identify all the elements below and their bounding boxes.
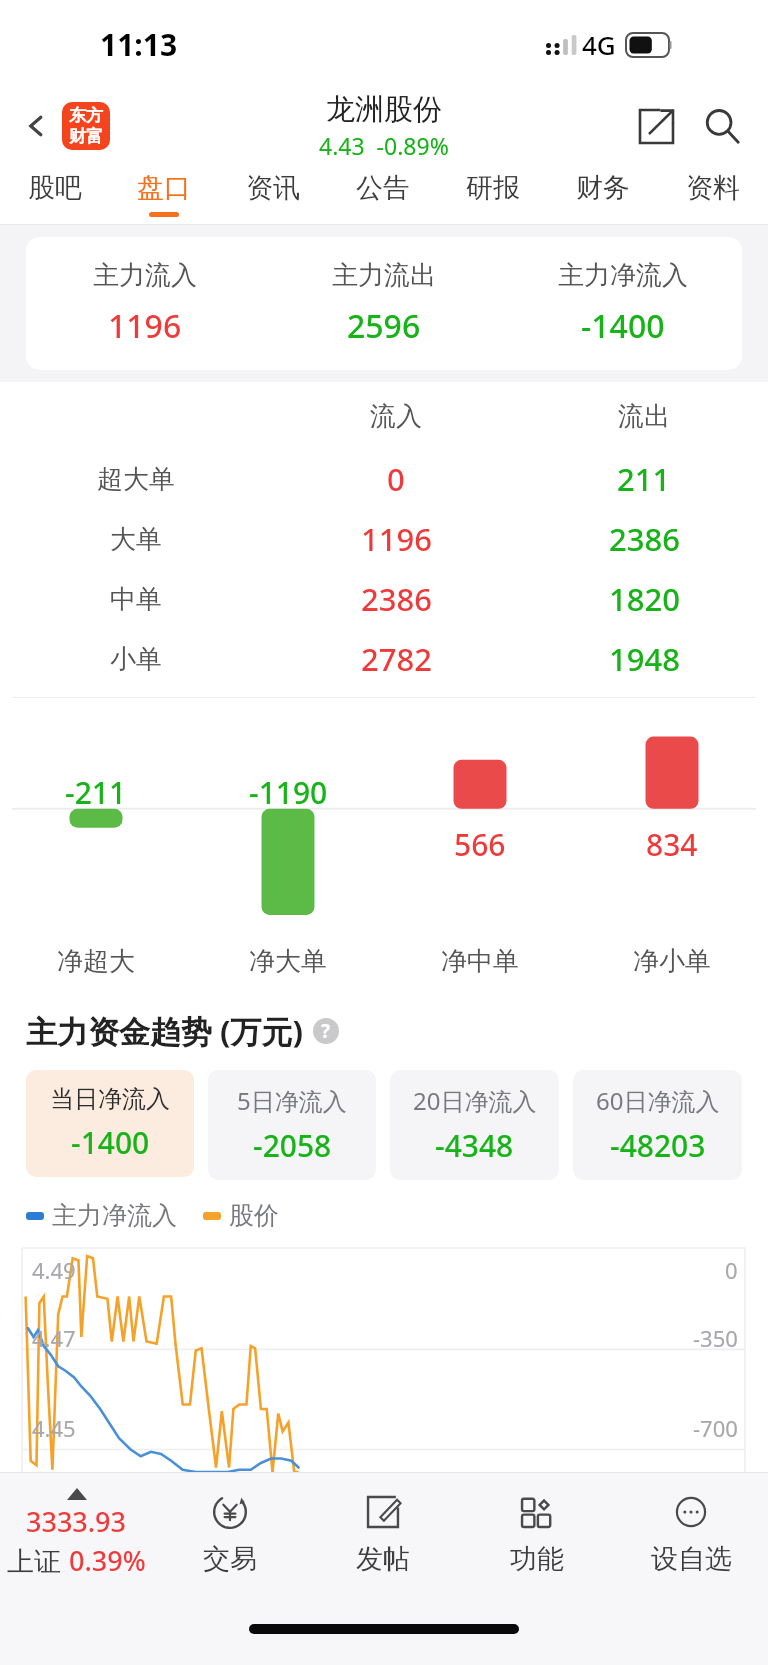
staticText: 2386 (361, 578, 432, 620)
staticText: 公告 (356, 171, 410, 205)
staticText: 净小单 (633, 945, 711, 978)
button[interactable]: 盘口 (109, 163, 218, 225)
staticText: ? (321, 1018, 331, 1044)
staticText: 4G (582, 27, 616, 62)
staticText: 4.43 -0.89% (319, 130, 449, 161)
button[interactable]: 资料 (658, 163, 768, 225)
staticText: 0.39% (69, 1542, 146, 1579)
staticText: 主力流出 (332, 259, 436, 292)
staticText: 盘口 (137, 171, 191, 205)
button[interactable]: 中单 (0, 569, 768, 629)
staticText: 东方 (69, 105, 103, 126)
button[interactable]: 主力流入 (26, 259, 742, 348)
button[interactable]: Back (14, 104, 58, 148)
staticText: 834 (646, 824, 698, 865)
staticText: 股吧 (28, 171, 82, 205)
staticText: 0 (725, 1255, 738, 1285)
staticText: 4.45 (32, 1413, 76, 1443)
staticText: -4348 (435, 1125, 514, 1166)
button[interactable]: 当日净流入 (26, 1070, 194, 1177)
staticText: 3333.93 (26, 1503, 127, 1540)
button[interactable]: 交易 (153, 1473, 306, 1593)
staticText: 1948 (609, 638, 680, 680)
staticText: 4.47 (32, 1323, 76, 1353)
staticText: 发帖 (356, 1542, 410, 1576)
button[interactable]: 发帖 (306, 1473, 460, 1593)
button[interactable]: East Money logo (62, 102, 110, 150)
button[interactable]: 小单 (0, 629, 768, 689)
staticText: 211 (617, 458, 671, 500)
staticText: 60日净流入 (596, 1084, 720, 1117)
button[interactable]: 5日净流入 (208, 1070, 376, 1180)
staticText: 设自选 (651, 1542, 732, 1576)
button[interactable]: 股吧 (0, 163, 109, 225)
button[interactable]: 财务 (548, 163, 658, 225)
staticText: 流出 (618, 400, 670, 433)
staticText: 交易 (203, 1542, 257, 1576)
button[interactable]: Help (313, 1018, 339, 1044)
button[interactable]: 3333.93 (0, 1473, 153, 1593)
staticText: 净大单 (249, 945, 327, 978)
staticText: -2058 (253, 1125, 332, 1166)
staticText: 主力净流入 (52, 1200, 177, 1231)
staticText: 上证 (7, 1542, 69, 1579)
staticText: 1196 (108, 304, 182, 348)
staticText: 净中单 (441, 945, 519, 978)
staticText: 11:13 (100, 24, 178, 65)
staticText: -211 (65, 772, 127, 813)
staticText: -700 (693, 1413, 738, 1443)
button[interactable]: 资讯 (218, 163, 328, 225)
staticText: 流入 (370, 400, 422, 433)
staticText: 主力净流入 (558, 259, 688, 292)
staticText: -350 (693, 1323, 738, 1353)
staticText: 主力流入 (93, 259, 197, 292)
staticText: 财富 (69, 126, 103, 147)
button[interactable]: 大单 (0, 509, 768, 569)
staticText: 20日净流入 (413, 1084, 537, 1117)
staticText: 研报 (466, 171, 520, 205)
button[interactable]: 60日净流入 (573, 1070, 742, 1180)
staticText: 小单 (110, 643, 162, 676)
staticText: 财务 (576, 171, 630, 205)
button[interactable]: 公告 (328, 163, 438, 225)
staticText: 龙洲股份 (326, 91, 442, 128)
staticText: 主力资金趋势 (万元) (26, 1010, 304, 1052)
staticText: 当日净流入 (50, 1084, 170, 1114)
staticText: 中单 (110, 583, 162, 616)
staticText: 0 (387, 458, 405, 500)
staticText: -48203 (610, 1125, 706, 1166)
staticText: 2782 (361, 638, 432, 680)
staticText: 4.49 (32, 1255, 76, 1285)
button[interactable]: 超大单 (0, 449, 768, 509)
button[interactable]: Share (628, 98, 684, 154)
staticText: 超大单 (97, 463, 175, 496)
button[interactable]: 设自选 (614, 1473, 768, 1593)
staticText: 2596 (347, 304, 421, 348)
staticText: 2386 (609, 518, 680, 560)
button[interactable]: Search (694, 98, 750, 154)
staticText: 资料 (686, 171, 740, 205)
staticText: 大单 (110, 523, 162, 556)
staticText: 功能 (510, 1542, 564, 1576)
staticText: 5日净流入 (237, 1084, 347, 1117)
button[interactable]: 研报 (438, 163, 548, 225)
button[interactable]: 功能 (460, 1473, 614, 1593)
staticText: 1196 (361, 518, 432, 560)
staticText: 股价 (229, 1200, 279, 1231)
staticText: -1400 (71, 1122, 150, 1163)
staticText: -1400 (581, 304, 665, 348)
staticText: 566 (454, 824, 506, 865)
staticText: 净超大 (57, 945, 135, 978)
staticText: -1190 (249, 772, 328, 813)
button[interactable]: 20日净流入 (390, 1070, 559, 1180)
staticText: 1820 (609, 578, 680, 620)
staticText: 资讯 (246, 171, 300, 205)
